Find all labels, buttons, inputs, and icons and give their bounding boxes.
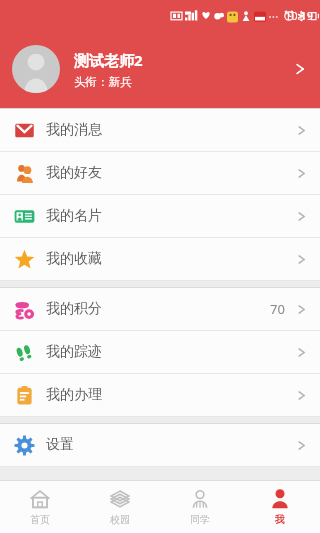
- staticText: 首页: [30, 513, 50, 526]
- button[interactable]: 校园: [80, 481, 160, 533]
- staticText: 测试老师2: [74, 50, 143, 70]
- staticText: 我的名片: [46, 207, 102, 225]
- staticText: 我的消息: [46, 121, 102, 139]
- button[interactable]: 测试老师2: [0, 30, 320, 108]
- staticText: 我的办理: [46, 386, 102, 404]
- staticText: 我: [275, 513, 285, 526]
- staticText: 我的积分: [46, 300, 102, 318]
- button[interactable]: 我的名片: [0, 195, 320, 237]
- button[interactable]: 我的办理: [0, 374, 320, 416]
- staticText: 70: [270, 300, 285, 318]
- staticText: 我的踪迹: [46, 343, 102, 361]
- button[interactable]: 首页: [0, 481, 80, 533]
- staticText: 同学: [190, 513, 210, 526]
- button[interactable]: 我的积分: [0, 288, 320, 330]
- staticText: 我的好友: [46, 164, 102, 182]
- button[interactable]: 我的收藏: [0, 238, 320, 280]
- other: Open profile: [292, 61, 308, 77]
- button[interactable]: 我的消息: [0, 109, 320, 151]
- button[interactable]: 我的好友: [0, 152, 320, 194]
- staticText: 设置: [46, 436, 74, 454]
- button[interactable]: 设置: [0, 424, 320, 466]
- staticText: 我的收藏: [46, 250, 102, 268]
- button[interactable]: 我的踪迹: [0, 331, 320, 373]
- button[interactable]: 同学: [160, 481, 240, 533]
- staticText: 头衔：新兵: [74, 75, 132, 89]
- staticText: 10:19: [285, 8, 314, 23]
- staticText: 校园: [110, 513, 130, 526]
- button[interactable]: 我: [240, 481, 320, 533]
